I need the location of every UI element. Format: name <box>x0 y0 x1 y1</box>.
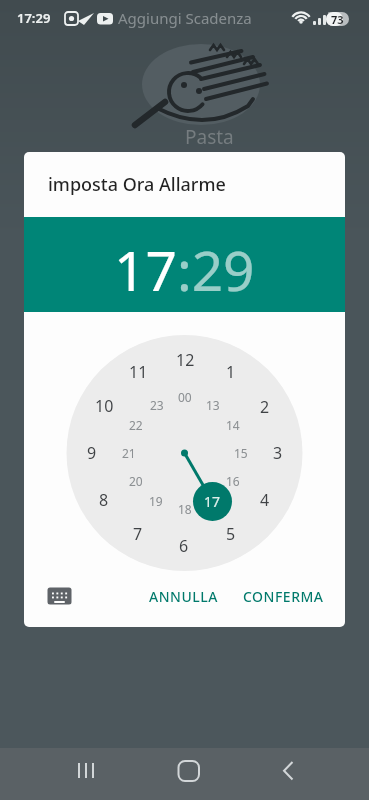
button[interactable]: ANNULLA <box>138 578 228 614</box>
staticText: 22 <box>129 417 143 433</box>
staticText: 21 <box>122 445 136 461</box>
staticText: 3 <box>273 442 283 464</box>
staticText: 5 <box>226 523 236 545</box>
staticText: 14 <box>226 417 240 433</box>
staticText: 1 <box>226 361 236 383</box>
staticText: imposta Ora Allarme <box>48 172 226 197</box>
staticText: 19 <box>149 493 163 509</box>
staticText: 13 <box>206 397 220 413</box>
staticText: 23 <box>150 397 164 413</box>
staticText: 4 <box>260 489 270 511</box>
staticText: 17:29 <box>114 232 255 307</box>
staticText: 00 <box>178 389 192 405</box>
staticText: 7 <box>133 523 143 545</box>
staticText: Pasta <box>185 124 234 148</box>
staticText: 12 <box>176 349 195 371</box>
staticText: 2 <box>260 396 270 418</box>
staticText: 73 <box>331 12 344 26</box>
staticText: CONFERMA <box>243 587 324 606</box>
staticText: ANNULLA <box>149 587 218 606</box>
staticText: Aggiungi Scadenza <box>118 8 252 28</box>
staticText: 20 <box>129 473 143 489</box>
staticText: 8 <box>99 489 109 511</box>
staticText: 10 <box>95 395 114 417</box>
button[interactable]: CONFERMA <box>233 578 333 614</box>
staticText: 11 <box>129 361 148 383</box>
staticText: 6 <box>179 535 189 557</box>
staticText: 18 <box>178 501 192 517</box>
staticText: 16 <box>226 473 240 489</box>
staticText: 17 <box>204 492 221 511</box>
staticText: 9 <box>87 442 97 464</box>
staticText: 15 <box>234 445 248 461</box>
button[interactable] <box>42 580 78 612</box>
staticText: 17:29 <box>17 9 51 27</box>
